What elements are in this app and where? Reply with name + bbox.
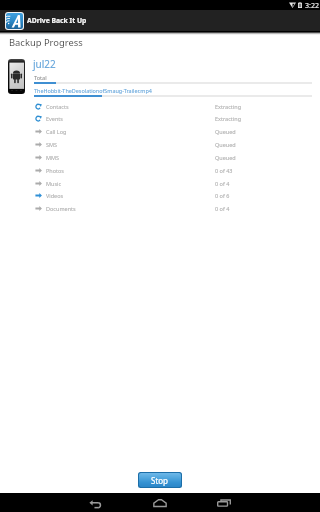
staticText: 0 of 4 (215, 205, 230, 212)
staticText: Call Log (46, 128, 67, 135)
staticText: TheHobbit-TheDesolationofSmaug-Trailer.m… (34, 87, 152, 94)
button[interactable]: Videos (0, 189, 320, 202)
button[interactable]: Home (128, 493, 192, 512)
staticText: 0 of 43 (215, 167, 233, 174)
button[interactable]: Photos (0, 164, 320, 177)
button[interactable]: Back (63, 493, 127, 512)
staticText: 0 of 4 (215, 180, 230, 187)
staticText: Music (46, 180, 62, 187)
staticText: Videos (46, 192, 64, 199)
staticText: jul22 (33, 57, 56, 71)
staticText: Backup Progress (9, 36, 83, 49)
staticText: ADrive Back It Up (27, 16, 87, 25)
button[interactable]: Recent apps (192, 493, 256, 512)
button[interactable]: Stop (139, 473, 181, 487)
button[interactable]: Documents (0, 202, 320, 215)
button[interactable]: MMS (0, 151, 320, 164)
staticText: Extracting (215, 115, 242, 122)
staticText: 0 of 6 (215, 192, 230, 199)
staticText: Photos (46, 167, 65, 174)
button[interactable]: Music (0, 177, 320, 190)
staticText: Extracting (215, 103, 242, 110)
staticText: Documents (46, 205, 76, 212)
button[interactable]: SMS (0, 138, 320, 151)
staticText: Events (46, 115, 63, 122)
button[interactable]: Events (0, 112, 320, 125)
staticText: Queued (215, 154, 236, 161)
staticText: Queued (215, 141, 236, 148)
staticText: Contacts (46, 103, 69, 110)
staticText: 3:22 (305, 1, 319, 11)
staticText: Total (34, 74, 47, 82)
button[interactable]: ADrive Back It Up (0, 10, 320, 31)
button[interactable]: Contacts (0, 100, 320, 113)
staticText: Stop (151, 475, 169, 486)
staticText: SMS (46, 141, 58, 148)
staticText: MMS (46, 154, 59, 161)
button[interactable]: Call Log (0, 125, 320, 138)
staticText: Queued (215, 128, 236, 135)
